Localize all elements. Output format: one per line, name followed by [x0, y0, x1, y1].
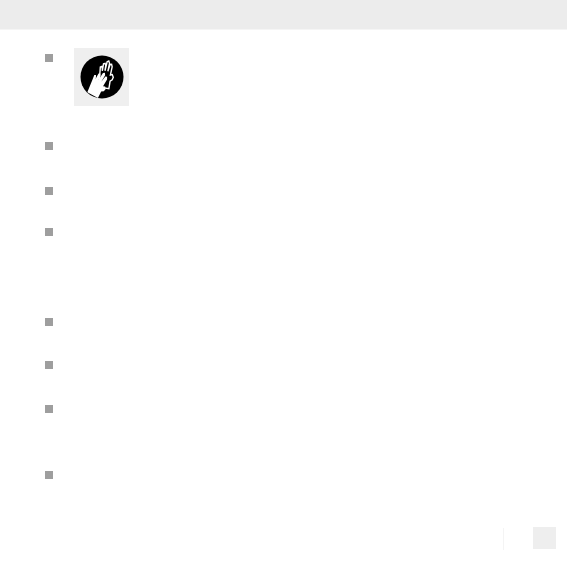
- button[interactable]: List item: [40, 357, 527, 373]
- button[interactable]: List item: [40, 224, 527, 240]
- button[interactable]: List item: [40, 467, 527, 483]
- button[interactable]: List item: [40, 401, 527, 417]
- button[interactable]: Wear protective gloves: [40, 44, 527, 110]
- button[interactable]: List item: [40, 183, 527, 199]
- button[interactable]: List item: [40, 314, 527, 330]
- button[interactable]: List item: [40, 138, 527, 154]
